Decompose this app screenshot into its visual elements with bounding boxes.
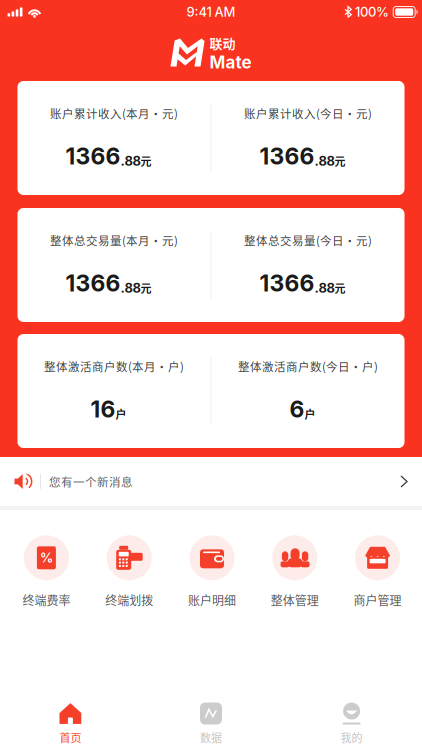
button[interactable]: 账户明细 — [171, 531, 253, 613]
staticText: 元 — [334, 153, 345, 169]
staticText: 户 — [304, 406, 315, 422]
staticText: 终端划拨 — [105, 591, 153, 609]
staticText: .88 — [314, 153, 334, 169]
button[interactable]: 首页 — [0, 690, 141, 750]
staticText: 终端费率 — [22, 591, 70, 609]
staticText: 整体管理 — [271, 591, 319, 609]
staticText: 元 — [334, 280, 345, 296]
staticText: 元 — [140, 153, 151, 169]
staticText: 数据 — [200, 729, 222, 745]
staticText: 16 — [90, 395, 115, 423]
staticText: 1366 — [259, 142, 314, 170]
staticText: 整体激活商户数(本月·户) — [44, 358, 184, 375]
staticText: 1366 — [259, 269, 314, 297]
staticText: 商户管理 — [354, 591, 402, 609]
staticText: .88 — [314, 280, 334, 296]
staticText: 元 — [140, 280, 151, 296]
staticText: 户 — [115, 406, 126, 422]
staticText: 账户累计收入(本月·元) — [50, 105, 178, 122]
staticText: .88 — [120, 153, 140, 169]
button[interactable]: 终端划拨 — [88, 531, 171, 613]
staticText: 100% — [355, 4, 389, 20]
button[interactable]: 您有一个新消息 — [0, 457, 422, 506]
staticText: 账户累计收入(今日·元) — [244, 105, 372, 122]
staticText: % — [40, 550, 53, 566]
staticText: 您有一个新消息 — [49, 473, 133, 490]
button[interactable]: 整体管理 — [253, 531, 336, 613]
button[interactable]: 商户管理 — [336, 531, 419, 613]
staticText: 首页 — [59, 729, 81, 745]
staticText: 1366 — [65, 142, 120, 170]
staticText: 账户明细 — [188, 591, 236, 609]
staticText: 6 — [289, 395, 304, 423]
button[interactable]: 数据 — [141, 690, 281, 750]
staticText: 整体激活商户数(今日·户) — [238, 358, 378, 375]
staticText: 联动 — [209, 33, 235, 52]
button[interactable]: 我的 — [281, 690, 422, 750]
staticText: 1366 — [65, 269, 120, 297]
button[interactable]: % — [5, 531, 88, 613]
staticText: 9:41 AM — [186, 4, 235, 20]
staticText: 整体总交易量(本月·元) — [50, 232, 178, 249]
staticText: Mate — [209, 52, 251, 73]
staticText: .88 — [120, 280, 140, 296]
staticText: 我的 — [341, 729, 363, 745]
staticText: 整体总交易量(今日·元) — [244, 232, 372, 249]
